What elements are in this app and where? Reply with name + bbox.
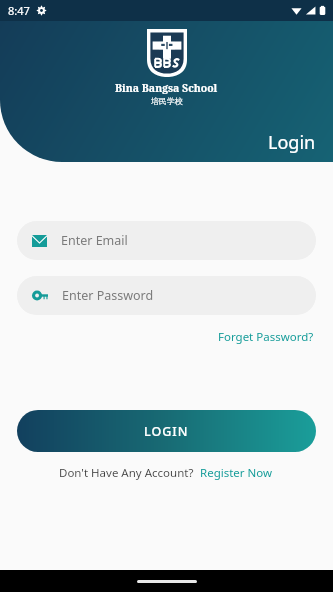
button[interactable]: Password field <box>17 276 316 315</box>
staticText: Login <box>268 130 316 155</box>
staticText: Register Now <box>200 465 273 481</box>
staticText: Forget Password? <box>218 329 314 345</box>
button[interactable]: LOGIN <box>17 410 316 452</box>
button[interactable]: Register Now <box>199 463 274 483</box>
staticText: 培民学校 <box>151 96 183 106</box>
button[interactable]: Forget Password? <box>216 327 316 347</box>
staticText: Enter Password <box>62 287 154 304</box>
staticText: 8:47 <box>8 3 30 18</box>
button[interactable]: Email field <box>17 221 316 260</box>
staticText: Bina Bangsa School <box>115 81 218 95</box>
staticText: Don't Have Any Account? <box>59 465 194 481</box>
staticText: Enter Email <box>61 232 128 249</box>
staticText: LOGIN <box>144 423 189 440</box>
